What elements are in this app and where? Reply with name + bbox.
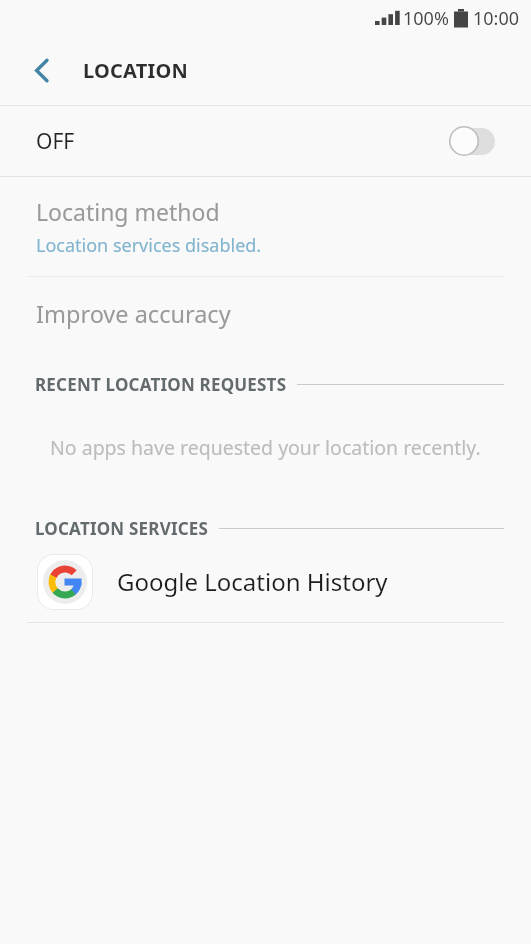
staticText: OFF <box>36 127 75 156</box>
staticText: Google Location History <box>117 565 388 598</box>
staticText: No apps have requested your location rec… <box>50 434 481 461</box>
staticText: 10:00 <box>473 6 520 31</box>
button[interactable] <box>449 126 495 156</box>
staticText: RECENT LOCATION REQUESTS <box>35 373 287 396</box>
button[interactable]: Locating method <box>0 177 531 276</box>
staticText: LOCATION SERVICES <box>35 517 209 540</box>
staticText: Locating method <box>36 196 220 227</box>
staticText: LOCATION <box>83 57 188 84</box>
staticText: 100% <box>403 6 449 31</box>
staticText: Location services disabled. <box>36 233 262 258</box>
button[interactable] <box>0 36 83 105</box>
button[interactable]: Improve accuracy <box>0 277 531 351</box>
button[interactable]: Google Location History <box>0 549 531 614</box>
staticText: Improve accuracy <box>36 298 231 330</box>
button[interactable]: OFF <box>0 106 531 176</box>
